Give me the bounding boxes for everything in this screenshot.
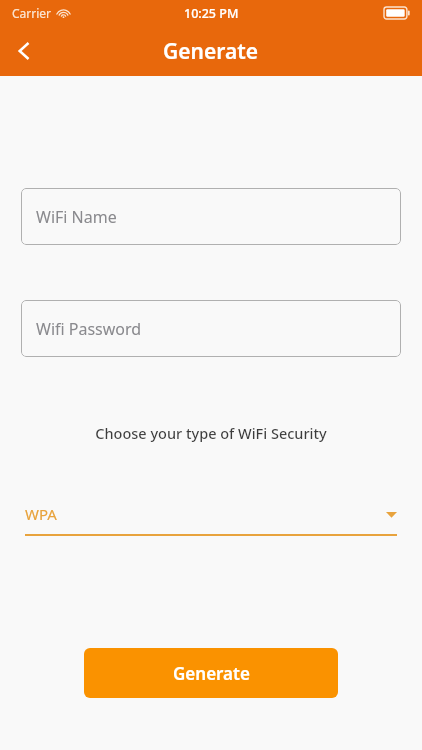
staticText: Generate [163,37,259,66]
other: Open dropdown [386,509,397,520]
button[interactable]: Wifi Password [21,300,401,357]
staticText: WiFi Name [36,206,117,228]
button[interactable]: WPA [25,501,397,536]
staticText: WPA [25,504,386,524]
staticText: Generate [173,662,250,685]
staticText: Carrier [12,5,52,21]
button[interactable]: WiFi Name [21,188,401,245]
button[interactable]: Back [0,27,48,75]
staticText: Choose your type of WiFi Security [0,423,422,443]
staticText: 10:25 PM [184,5,239,22]
staticText: Wifi Password [36,318,142,340]
button[interactable]: Generate [84,648,338,698]
